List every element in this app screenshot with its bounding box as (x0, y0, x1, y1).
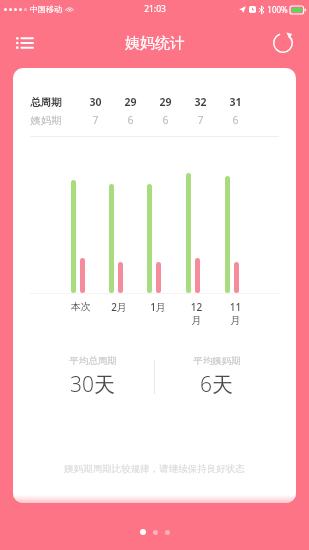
staticText: 2月 (111, 300, 127, 314)
staticText: 姨妈期周期比较规律，请继续保持良好状态 (64, 463, 245, 475)
staticText: 6 (127, 113, 134, 127)
staticText: 30 (89, 95, 102, 109)
staticText: 平均姨妈期 (193, 355, 241, 367)
staticText: 100% (267, 4, 288, 15)
staticText: 1月 (150, 300, 166, 314)
staticText: 29 (124, 95, 137, 109)
staticText: 7 (197, 113, 204, 127)
staticText: 31 (229, 95, 242, 109)
staticText: 21:03 (144, 3, 166, 15)
button[interactable]: Refresh (266, 26, 300, 60)
staticText: 11月 (225, 300, 246, 327)
staticText: 6天 (200, 370, 233, 399)
staticText: 30天 (70, 370, 115, 399)
staticText: 6 (162, 113, 169, 127)
staticText: 中国移动 (30, 4, 62, 14)
staticText: 平均总周期 (69, 355, 117, 367)
staticText: 32 (194, 95, 207, 109)
staticText: 6 (232, 113, 239, 127)
button[interactable]: Menu (8, 26, 42, 60)
staticText: 本次 (71, 300, 91, 313)
staticText: 12月 (186, 300, 207, 327)
staticText: 姨妈统计 (125, 34, 185, 53)
staticText: 29 (159, 95, 172, 109)
staticText: 姨妈期 (30, 114, 62, 127)
staticText: 7 (92, 113, 99, 127)
staticText: 总周期 (30, 96, 62, 109)
